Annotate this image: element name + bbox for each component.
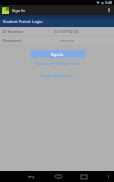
- button[interactable]: More options: [104, 5, 114, 15]
- staticText: Sign In: [51, 52, 63, 57]
- staticText: Forgot Password?: [41, 73, 73, 78]
- staticText: Sign In: [12, 7, 25, 13]
- button[interactable]: Back: [25, 171, 37, 182]
- staticText: Password: [3, 38, 21, 43]
- staticText: 3:40: [105, 0, 112, 5]
- button[interactable]: New User? Register here: [35, 61, 80, 66]
- button[interactable]: Sign In: [30, 50, 85, 58]
- button[interactable]: Password: [0, 37, 114, 44]
- button[interactable]: ID Number: [0, 28, 114, 35]
- staticText: Student Portal: Login: [3, 18, 43, 24]
- staticText: 3C16/7P32 U4: [54, 29, 78, 34]
- button[interactable]: Recent apps: [78, 171, 90, 182]
- staticText: New User? Register here: [35, 61, 80, 66]
- button[interactable]: Forgot Password?: [41, 73, 74, 78]
- staticText: ID Number: [3, 29, 23, 34]
- button[interactable]: Home: [52, 171, 64, 182]
